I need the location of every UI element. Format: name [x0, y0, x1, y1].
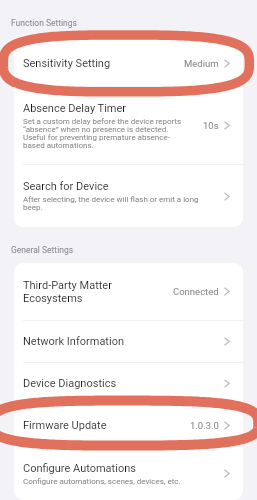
- staticText: Connected: [173, 286, 219, 297]
- button[interactable]: Search for Device: [14, 165, 243, 227]
- staticText: Absence Delay Timer: [23, 102, 127, 115]
- staticText: Configure Automations: [23, 462, 136, 475]
- button[interactable]: Third-Party Matter Ecosystems: [14, 263, 243, 320]
- staticText: Third-Party Matter Ecosystems: [23, 279, 112, 305]
- staticText: 1.0.3.0: [190, 420, 219, 431]
- staticText: Search for Device: [23, 180, 109, 193]
- staticText: Set a custom delay before the device rep…: [23, 117, 182, 150]
- staticText: Device Diagnostics: [23, 377, 117, 390]
- staticText: Firmware Update: [23, 419, 107, 432]
- staticText: 10s: [203, 120, 219, 131]
- button[interactable]: Network Information: [14, 321, 243, 362]
- button[interactable]: Configure Automations: [14, 447, 243, 500]
- button[interactable]: Device Diagnostics: [14, 363, 243, 404]
- staticText: Sensitivity Setting: [23, 57, 111, 70]
- button[interactable]: Sensitivity Setting: [14, 40, 243, 86]
- staticText: General Settings: [11, 245, 74, 255]
- staticText: After selecting, the device will flash o…: [23, 195, 199, 212]
- staticText: Medium: [184, 58, 219, 69]
- staticText: Network Information: [23, 335, 124, 348]
- button[interactable]: Firmware Update: [14, 405, 243, 446]
- button[interactable]: Absence Delay Timer: [14, 87, 243, 164]
- staticText: Configure automations, scenes, devices, …: [23, 477, 181, 486]
- staticText: Function Settings: [11, 18, 77, 28]
